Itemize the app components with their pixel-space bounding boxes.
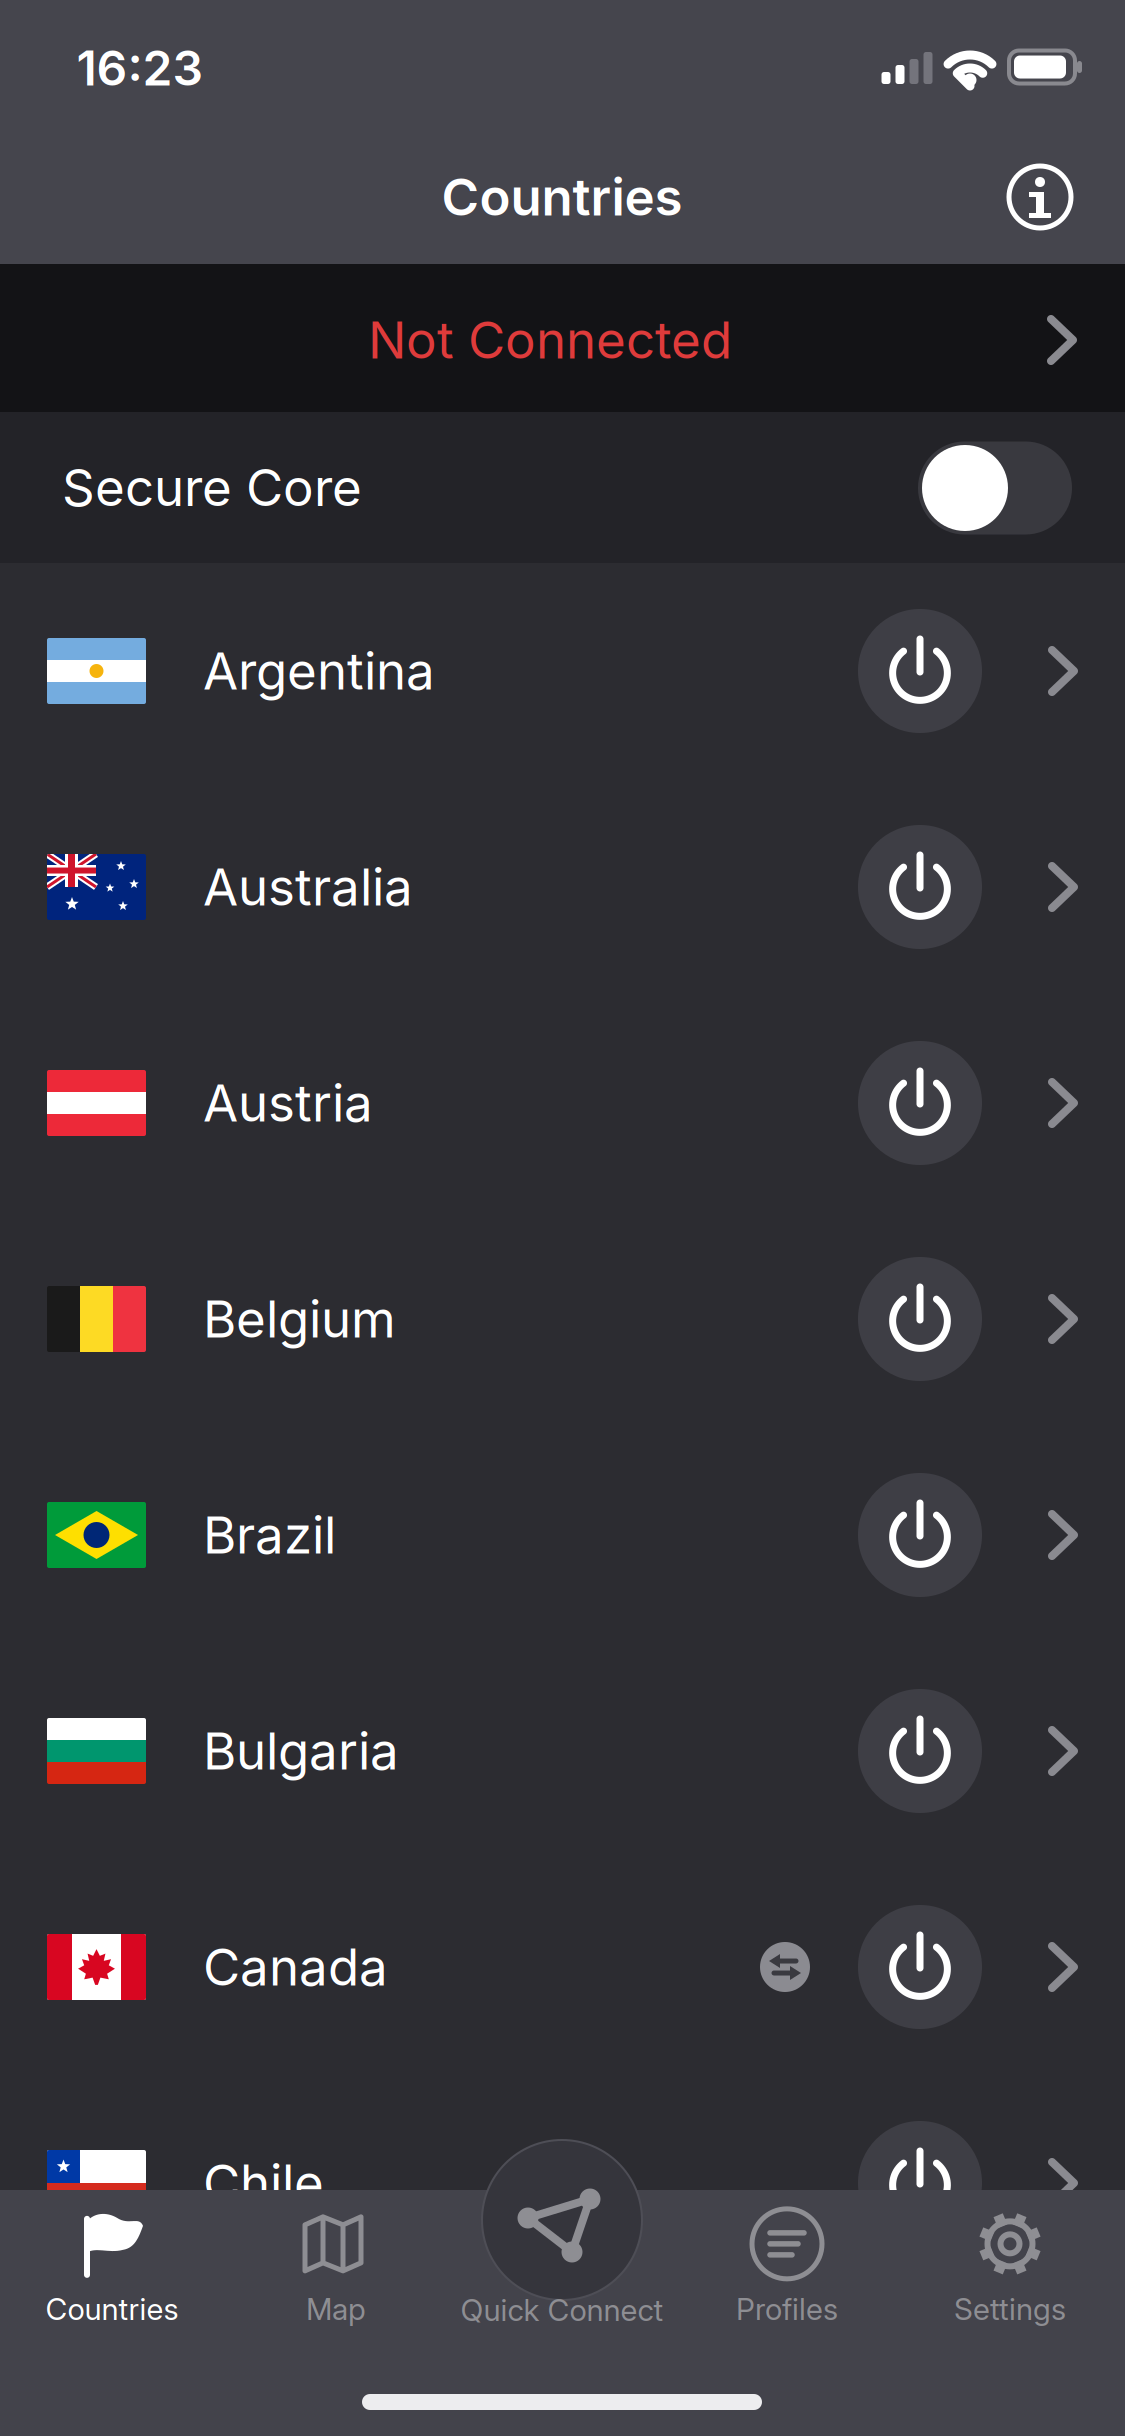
button[interactable]: Argentina: [0, 563, 1125, 779]
staticText: Australia: [203, 856, 413, 918]
button[interactable]: Australia: [0, 779, 1125, 995]
staticText: Austria: [203, 1072, 373, 1134]
staticText: Chile: [203, 2152, 324, 2214]
staticText: Belgium: [203, 1288, 396, 1350]
button[interactable]: Countries: [7, 2194, 217, 2344]
button[interactable]: Austria: [0, 995, 1125, 1211]
button[interactable]: Brazil: [0, 1427, 1125, 1643]
staticText: Map: [306, 2291, 366, 2327]
button[interactable]: Quick Connect: [412, 2168, 712, 2340]
button[interactable]: Connect to Argentina: [858, 609, 982, 733]
button[interactable]: Settings: [905, 2194, 1115, 2344]
button[interactable]: Chile: [0, 2075, 1125, 2291]
button[interactable]: Information: [1007, 164, 1073, 230]
button[interactable]: Map: [231, 2194, 441, 2344]
button[interactable]: Connect to Canada: [858, 1905, 982, 2029]
staticText: Quick Connect: [460, 2292, 663, 2328]
staticText: Settings: [954, 2291, 1066, 2327]
button[interactable]: Bulgaria: [0, 1643, 1125, 1859]
button[interactable]: Not Connected: [0, 264, 1125, 412]
staticText: 16:23: [76, 39, 203, 97]
button[interactable]: Connect to Belgium: [858, 1257, 982, 1381]
staticText: Argentina: [203, 640, 435, 702]
staticText: Profiles: [736, 2291, 838, 2327]
button[interactable]: Secure Core toggle: [918, 441, 1072, 534]
staticText: Bulgaria: [203, 1720, 399, 1782]
button[interactable]: Connect to Austria: [858, 1041, 982, 1165]
button[interactable]: Connect to Chile: [858, 2121, 982, 2245]
button[interactable]: Canada: [0, 1859, 1125, 2075]
button[interactable]: Connect to Australia: [858, 825, 982, 949]
staticText: Countries: [441, 166, 682, 228]
staticText: Secure Core: [62, 457, 362, 518]
button[interactable]: Profiles: [682, 2194, 892, 2344]
button[interactable]: Connect to Bulgaria: [858, 1689, 982, 1813]
staticText: Canada: [203, 1936, 388, 1998]
button[interactable]: Connect to Brazil: [858, 1473, 982, 1597]
staticText: Not Connected: [368, 309, 732, 371]
staticText: Countries: [45, 2291, 178, 2327]
staticText: Brazil: [203, 1504, 336, 1566]
button[interactable]: Belgium: [0, 1211, 1125, 1427]
